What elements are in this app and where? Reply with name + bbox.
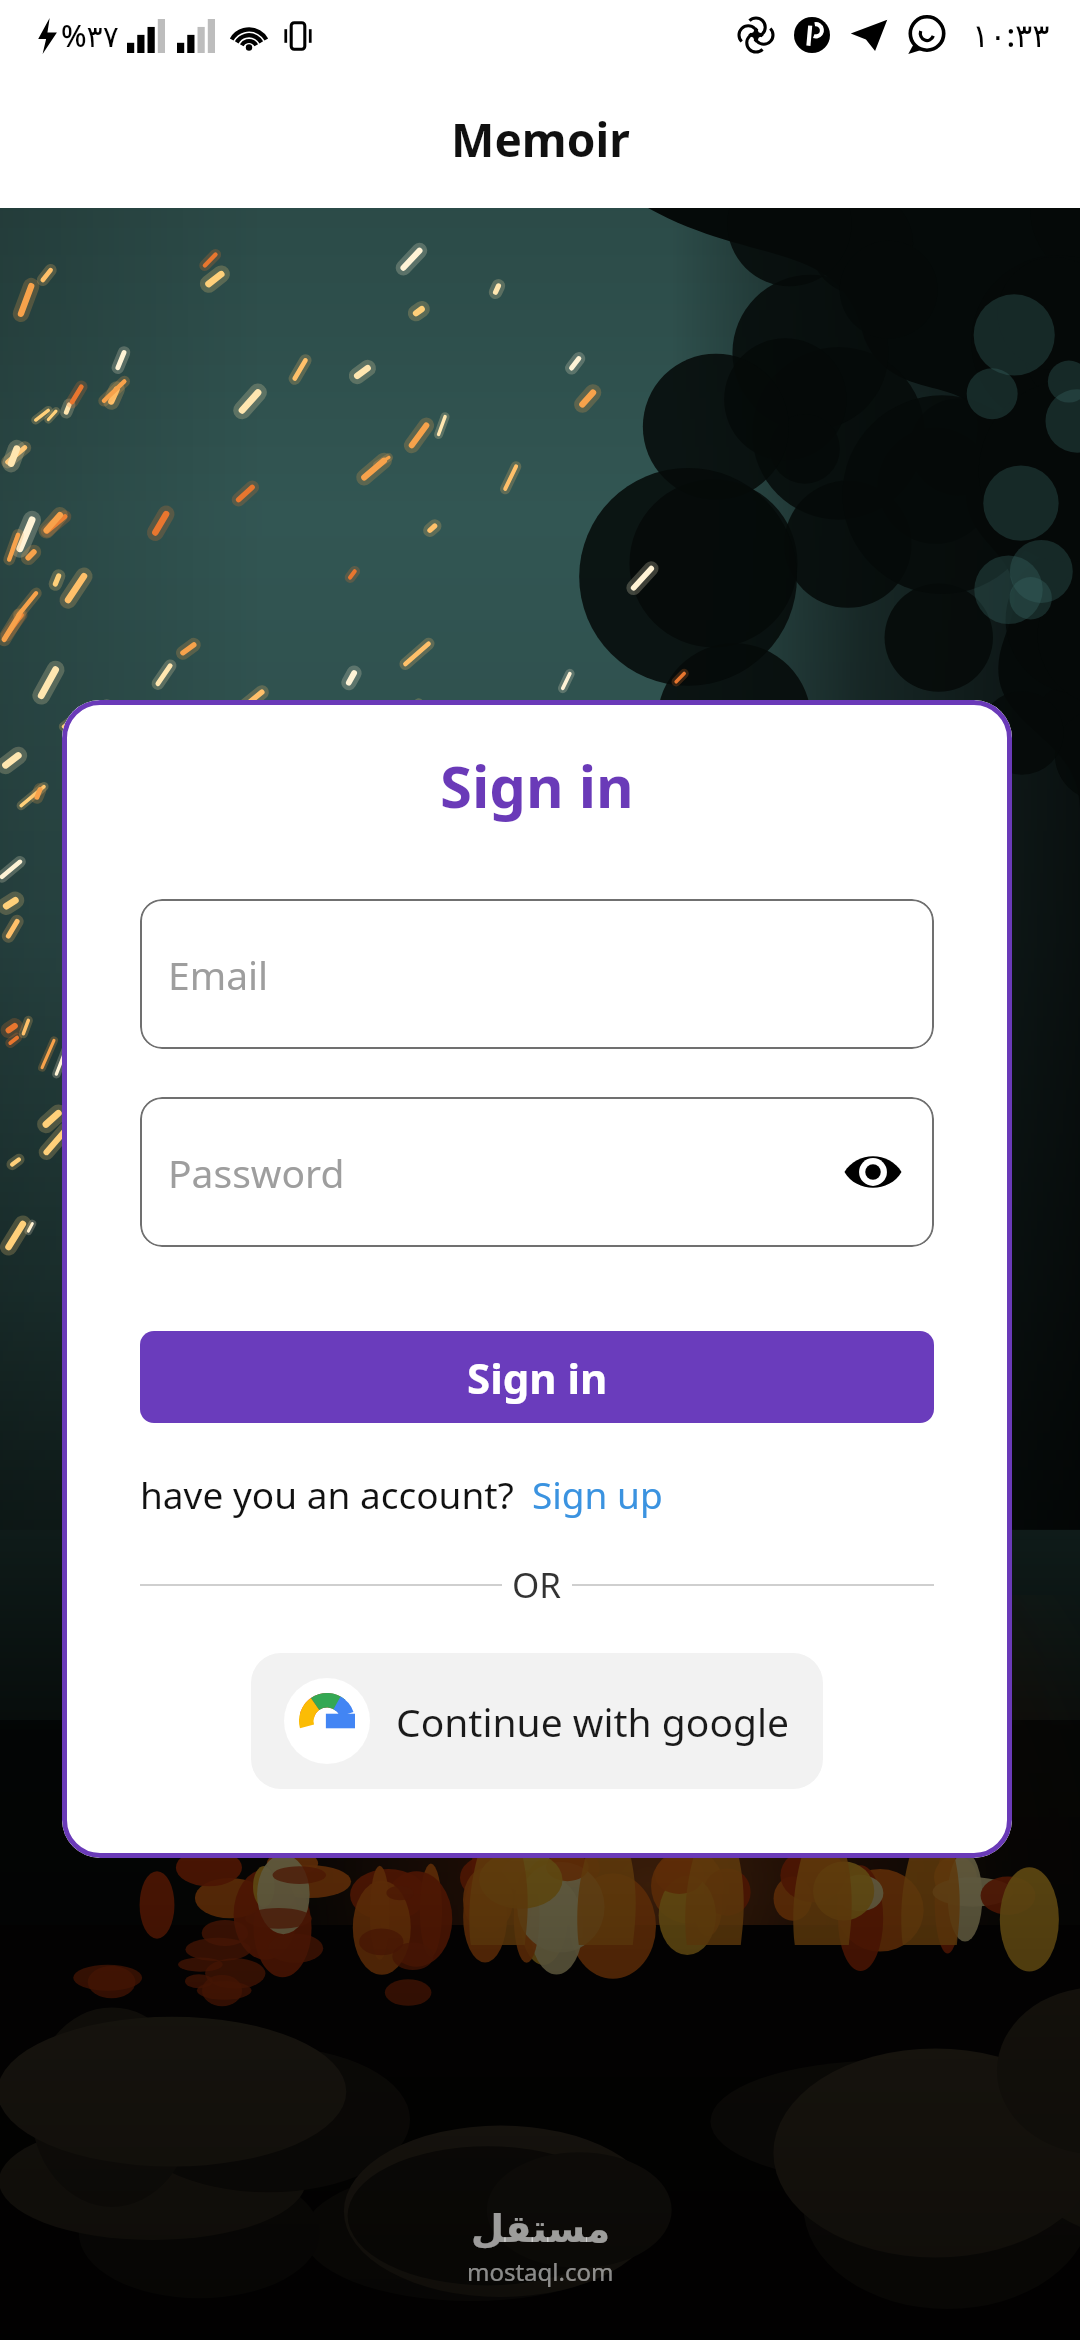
staticText: Password [168,1146,345,1199]
staticText: mostaql.com [467,2255,614,2288]
staticText: Email [168,948,269,1001]
staticText: have you an account? [140,1469,514,1519]
staticText: Sign up [532,1469,663,1519]
staticText: Sign in [467,1349,608,1406]
staticText: Sign in [440,746,634,825]
button[interactable]: Continue with google [251,1653,823,1789]
button[interactable]: Password [140,1097,934,1247]
staticText: Memoir [451,108,630,171]
staticText: Continue with google [396,1695,790,1748]
button[interactable]: Email [140,899,934,1049]
button[interactable]: Sign in [140,1331,934,1423]
button[interactable]: Sign up [532,1469,663,1519]
staticText: ١٠:٣٣ [972,13,1050,57]
staticText: %٣٧ [61,15,119,56]
staticText: OR [512,1561,562,1609]
button[interactable]: Show password [838,1137,908,1207]
staticText: مستقل [471,2207,610,2251]
